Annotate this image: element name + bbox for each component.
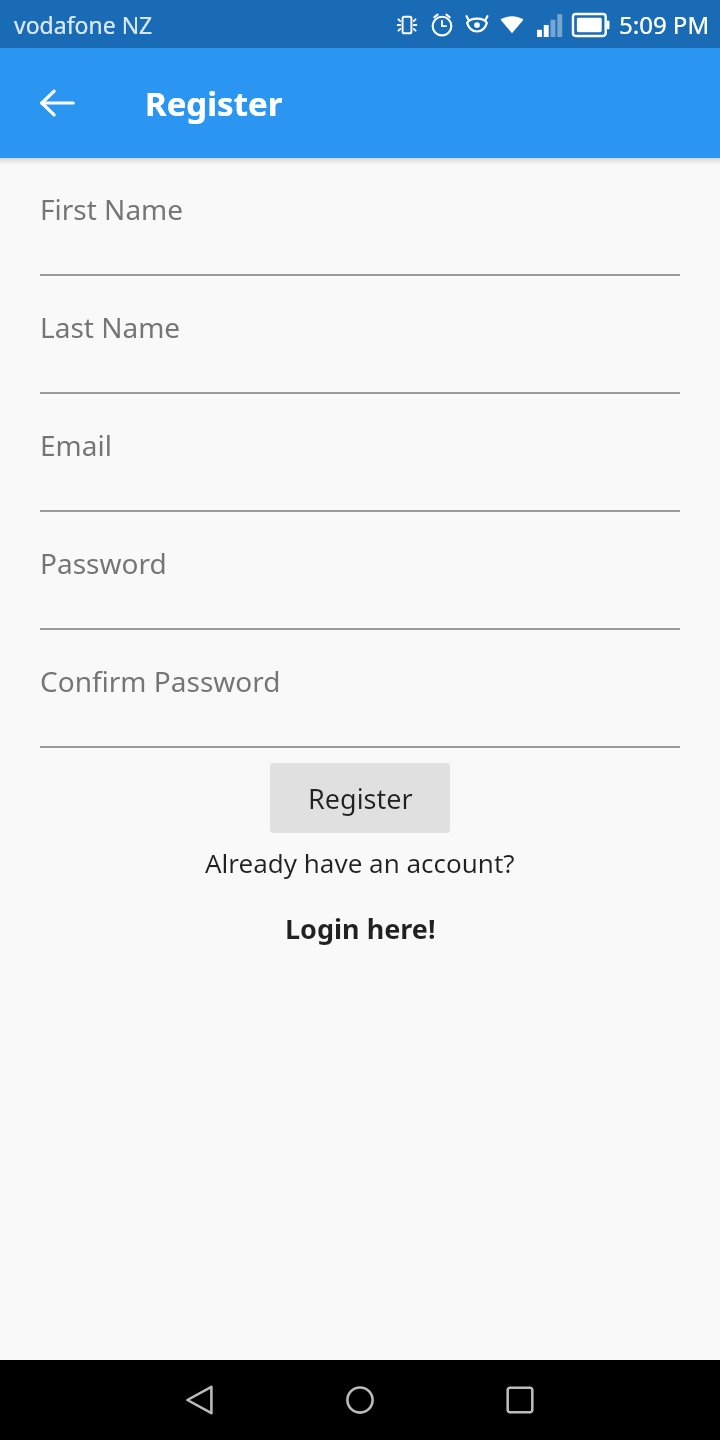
button[interactable]: Back <box>21 67 93 139</box>
button[interactable]: Back <box>160 1360 240 1440</box>
staticText: Email <box>40 426 112 464</box>
staticText: First Name <box>40 190 184 228</box>
staticText: Already have an account? <box>205 845 515 880</box>
staticText: Confirm Password <box>40 662 281 700</box>
button[interactable]: Email <box>0 394 720 512</box>
button[interactable]: Login here! <box>277 906 444 951</box>
staticText: Password <box>40 544 167 582</box>
button[interactable]: Password <box>0 512 720 630</box>
staticText: 5:09 PM <box>619 8 710 41</box>
button[interactable]: Register <box>270 763 450 833</box>
button[interactable]: First Name <box>0 158 720 276</box>
staticText: Login here! <box>285 910 436 947</box>
button[interactable]: Home <box>320 1360 400 1440</box>
button[interactable]: Recent apps <box>480 1360 560 1440</box>
staticText: Register <box>145 81 283 126</box>
staticText: Register <box>308 780 413 817</box>
staticText: vodafone NZ <box>14 9 153 40</box>
button[interactable]: Last Name <box>0 276 720 394</box>
staticText: Last Name <box>40 308 181 346</box>
button[interactable]: Confirm Password <box>0 630 720 748</box>
